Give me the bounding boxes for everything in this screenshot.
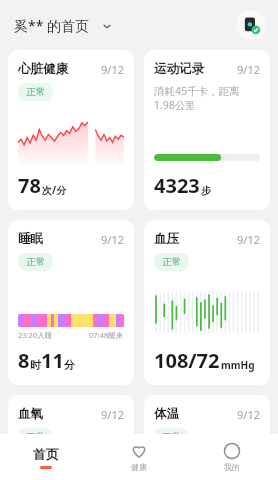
- staticText: 首页: [33, 446, 59, 462]
- staticText: 4323: [154, 172, 200, 199]
- staticText: 9/12: [101, 407, 124, 422]
- button[interactable]: 心脏健康: [8, 50, 134, 210]
- staticText: 正常: [26, 431, 45, 443]
- staticText: 9/12: [237, 62, 260, 77]
- button[interactable]: 我的: [185, 434, 278, 480]
- staticText: 正常: [26, 256, 45, 268]
- staticText: 正常: [162, 256, 181, 268]
- staticText: 步: [201, 184, 211, 197]
- staticText: 78: [18, 172, 41, 199]
- staticText: 9/12: [237, 407, 260, 422]
- staticText: 血压: [154, 231, 179, 247]
- button[interactable]: 首页: [0, 434, 92, 480]
- button[interactable]: 体温: [144, 395, 270, 480]
- staticText: 1.98公里: [154, 98, 196, 112]
- staticText: 9/12: [101, 232, 124, 247]
- staticText: 分: [64, 358, 75, 372]
- button[interactable]: 健康: [92, 434, 185, 480]
- staticText: 时: [30, 358, 41, 372]
- staticText: 8: [18, 347, 30, 374]
- staticText: 体温: [154, 406, 179, 422]
- button[interactable]: 血氧: [8, 395, 134, 480]
- staticText: 健康: [131, 462, 147, 472]
- button[interactable]: 运动记录: [144, 50, 270, 210]
- staticText: 睡眠: [18, 231, 43, 247]
- staticText: 9/12: [237, 232, 260, 247]
- staticText: 108/72: [154, 347, 220, 374]
- staticText: 正常: [162, 431, 181, 443]
- staticText: 心脏健康: [18, 61, 68, 77]
- staticText: 消耗45千卡，距离: [154, 84, 240, 98]
- button[interactable]: 血压: [144, 220, 270, 385]
- button[interactable]: 奚** 的首页: [14, 16, 113, 35]
- button[interactable]: 睡眠: [8, 220, 134, 385]
- staticText: 11: [41, 347, 64, 374]
- staticText: 正常: [26, 86, 45, 98]
- staticText: mmHg: [221, 358, 255, 372]
- staticText: 奚** 的首页: [14, 16, 89, 35]
- staticText: 次/分: [42, 183, 67, 197]
- staticText: 血氧: [18, 406, 43, 422]
- staticText: 运动记录: [154, 61, 204, 77]
- staticText: 23:20入睡: [18, 330, 53, 340]
- staticText: 07:48醒来: [89, 330, 124, 340]
- staticText: 我的: [224, 462, 240, 472]
- button[interactable]: Device status: [236, 10, 266, 40]
- staticText: 9/12: [101, 62, 124, 77]
